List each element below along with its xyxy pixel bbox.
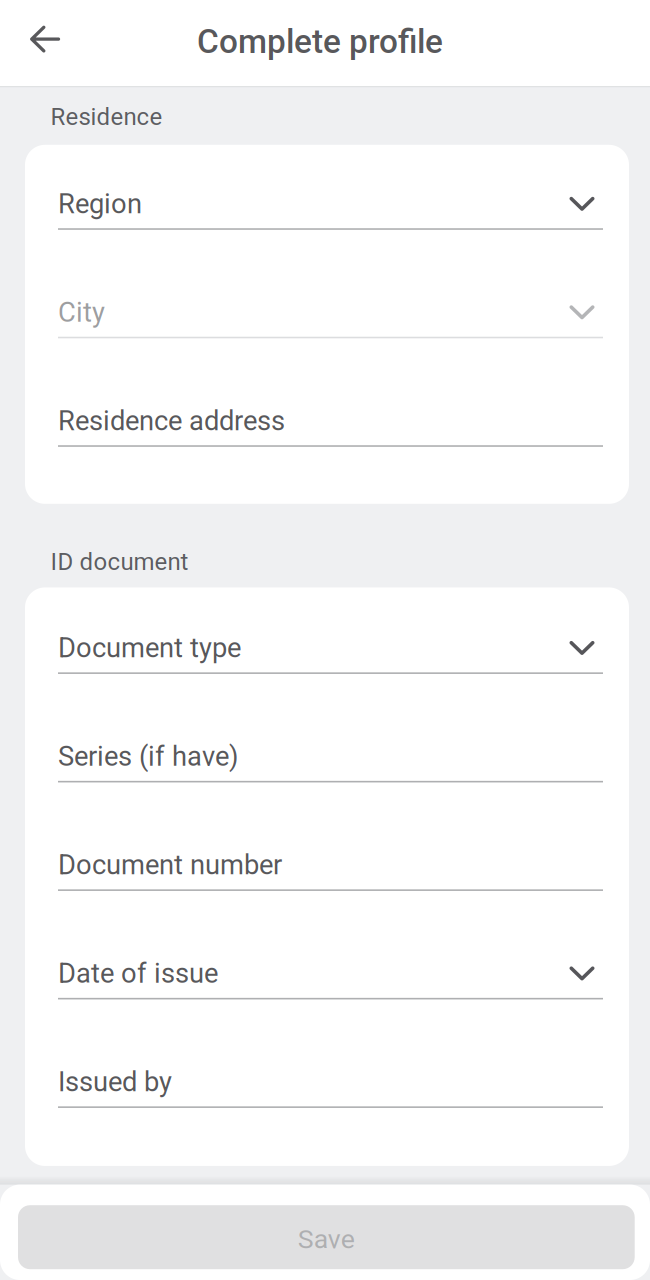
button[interactable]: Save <box>18 1205 635 1269</box>
button[interactable]: Issued by <box>58 1067 603 1108</box>
staticText: City <box>58 296 105 328</box>
staticText: Series (if have) <box>58 740 239 772</box>
staticText: Issued by <box>58 1066 172 1098</box>
staticText: Save <box>298 1224 355 1255</box>
staticText: Date of issue <box>58 957 218 989</box>
button[interactable]: Document number <box>58 850 603 958</box>
staticText: Document type <box>58 632 241 664</box>
button[interactable]: Region <box>58 189 603 297</box>
staticText: Region <box>58 188 142 220</box>
staticText: Residence <box>50 103 162 131</box>
staticText: Document number <box>58 849 282 881</box>
button[interactable]: City <box>58 297 603 406</box>
staticText: ID document <box>50 548 188 576</box>
staticText: Complete profile <box>197 22 443 61</box>
staticText: Residence address <box>58 405 285 437</box>
button[interactable]: Residence address <box>58 406 603 447</box>
button[interactable]: Series (if have) <box>58 741 603 850</box>
button[interactable]: Date of issue <box>58 958 603 1067</box>
button[interactable]: Document type <box>58 633 603 741</box>
button[interactable]: Back <box>0 26 74 61</box>
